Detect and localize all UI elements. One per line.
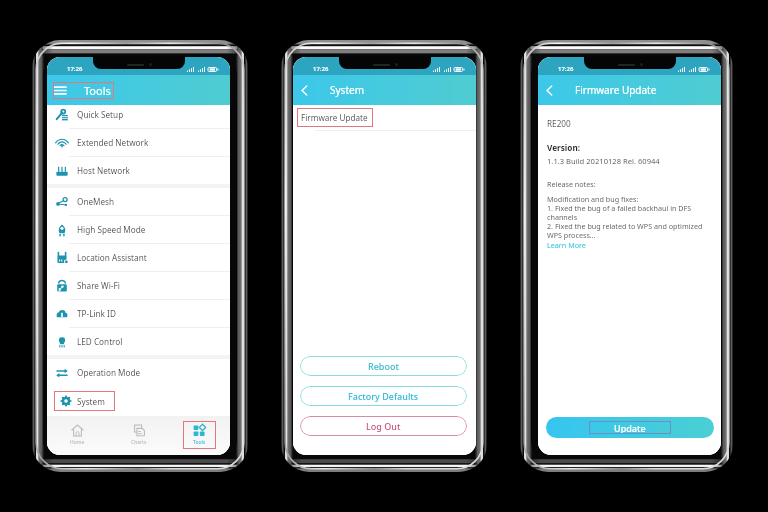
staticText: RE200 — [547, 118, 571, 129]
button[interactable]: Extended Network — [47, 129, 230, 156]
button[interactable]: Back — [295, 81, 313, 99]
button[interactable]: Update — [546, 417, 714, 438]
button[interactable]: Home — [47, 416, 108, 455]
staticText: Quick Setup — [77, 109, 124, 120]
staticText: Firmware Update — [575, 83, 657, 97]
staticText: Operation Mode — [77, 367, 141, 378]
staticText: Log Out — [366, 420, 401, 432]
staticText: 17:26 — [67, 65, 83, 73]
button[interactable]: High Speed Mode — [47, 216, 230, 243]
button[interactable]: Log Out — [300, 416, 467, 436]
button[interactable]: Reboot — [300, 356, 467, 376]
other: Menu — [54, 86, 66, 95]
staticText: Factory Defaults — [348, 390, 419, 402]
staticText: Home — [70, 439, 85, 446]
button[interactable]: Tools — [169, 416, 230, 455]
staticText: 17:26 — [313, 65, 329, 73]
staticText: Reboot — [368, 360, 399, 372]
staticText: Host Network — [77, 165, 130, 176]
staticText: Share Wi-Fi — [77, 280, 120, 291]
staticText: Charts — [131, 439, 147, 446]
button[interactable]: Factory Defaults — [300, 386, 467, 406]
staticText: LED Control — [77, 336, 123, 347]
staticText: Modification and bug fixes: 1. Fixed the… — [547, 194, 703, 240]
staticText: System — [77, 396, 105, 407]
button[interactable]: Host Network — [47, 157, 230, 184]
staticText: High Speed Mode — [77, 224, 146, 235]
button[interactable]: Quick Setup — [47, 101, 230, 128]
staticText: Extended Network — [77, 137, 149, 148]
staticText: Firmware Update — [301, 112, 368, 123]
button[interactable]: Location Assistant — [47, 244, 230, 271]
button[interactable]: TP-Link ID — [47, 300, 230, 327]
staticText: Update — [614, 422, 646, 434]
staticText: System — [330, 83, 364, 97]
button[interactable]: OneMesh — [47, 188, 230, 215]
button[interactable]: LED Control — [47, 328, 230, 355]
staticText: 1.1.3 Build 20210128 Rel. 60944 — [547, 156, 660, 166]
staticText: Release notes: — [547, 179, 596, 189]
staticText: OneMesh — [77, 196, 115, 207]
button[interactable]: Learn More — [547, 240, 586, 250]
button[interactable]: Back — [540, 81, 558, 99]
button[interactable]: Menu — [53, 82, 114, 99]
button[interactable]: Firmware Update — [293, 105, 476, 130]
staticText: Location Assistant — [77, 252, 147, 263]
button[interactable]: Share Wi-Fi — [47, 272, 230, 299]
staticText: 17:26 — [558, 65, 574, 73]
staticText: Tools — [84, 83, 111, 98]
button[interactable]: Operation Mode — [47, 359, 230, 386]
button[interactable]: System — [47, 386, 230, 412]
button[interactable]: Charts — [108, 416, 169, 455]
staticText: Version: — [547, 142, 581, 153]
staticText: Tools — [193, 439, 206, 446]
staticText: Learn More — [547, 240, 586, 250]
staticText: TP-Link ID — [77, 308, 116, 319]
